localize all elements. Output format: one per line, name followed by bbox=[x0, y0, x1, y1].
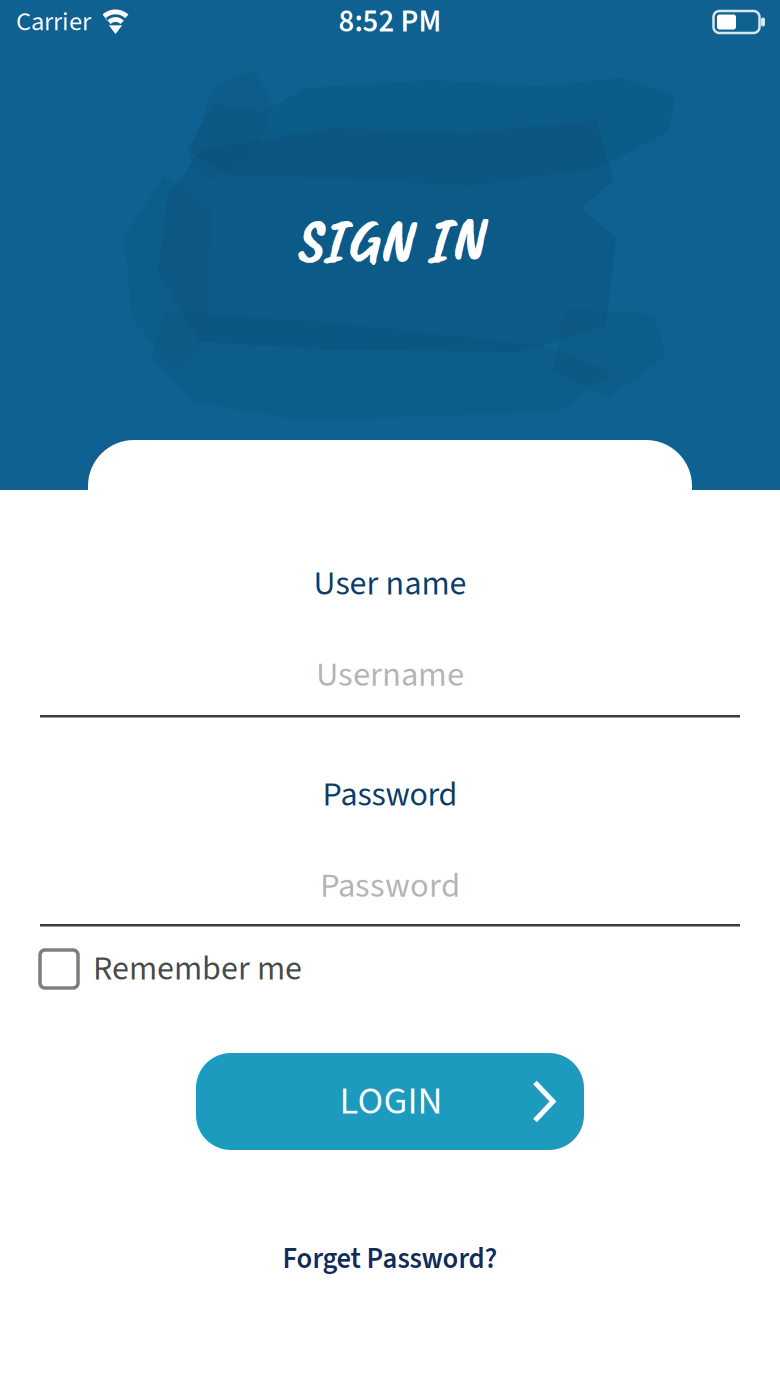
staticText: Forget Password? bbox=[282, 1239, 497, 1279]
staticText: SIGN IN bbox=[295, 200, 484, 279]
button[interactable]: Forget Password? bbox=[230, 1234, 550, 1284]
staticText: Password bbox=[320, 861, 460, 911]
staticText: Remember me bbox=[93, 945, 302, 993]
staticText: 8:52 PM bbox=[338, 0, 441, 44]
staticText: LOGIN bbox=[339, 1074, 442, 1129]
staticText: User name bbox=[313, 560, 466, 608]
staticText: Password bbox=[322, 771, 457, 819]
staticText: Carrier bbox=[16, 3, 91, 41]
button[interactable]: LOGIN bbox=[196, 1053, 584, 1150]
staticText: Username bbox=[316, 650, 464, 700]
button[interactable]: Remember me bbox=[40, 940, 420, 998]
